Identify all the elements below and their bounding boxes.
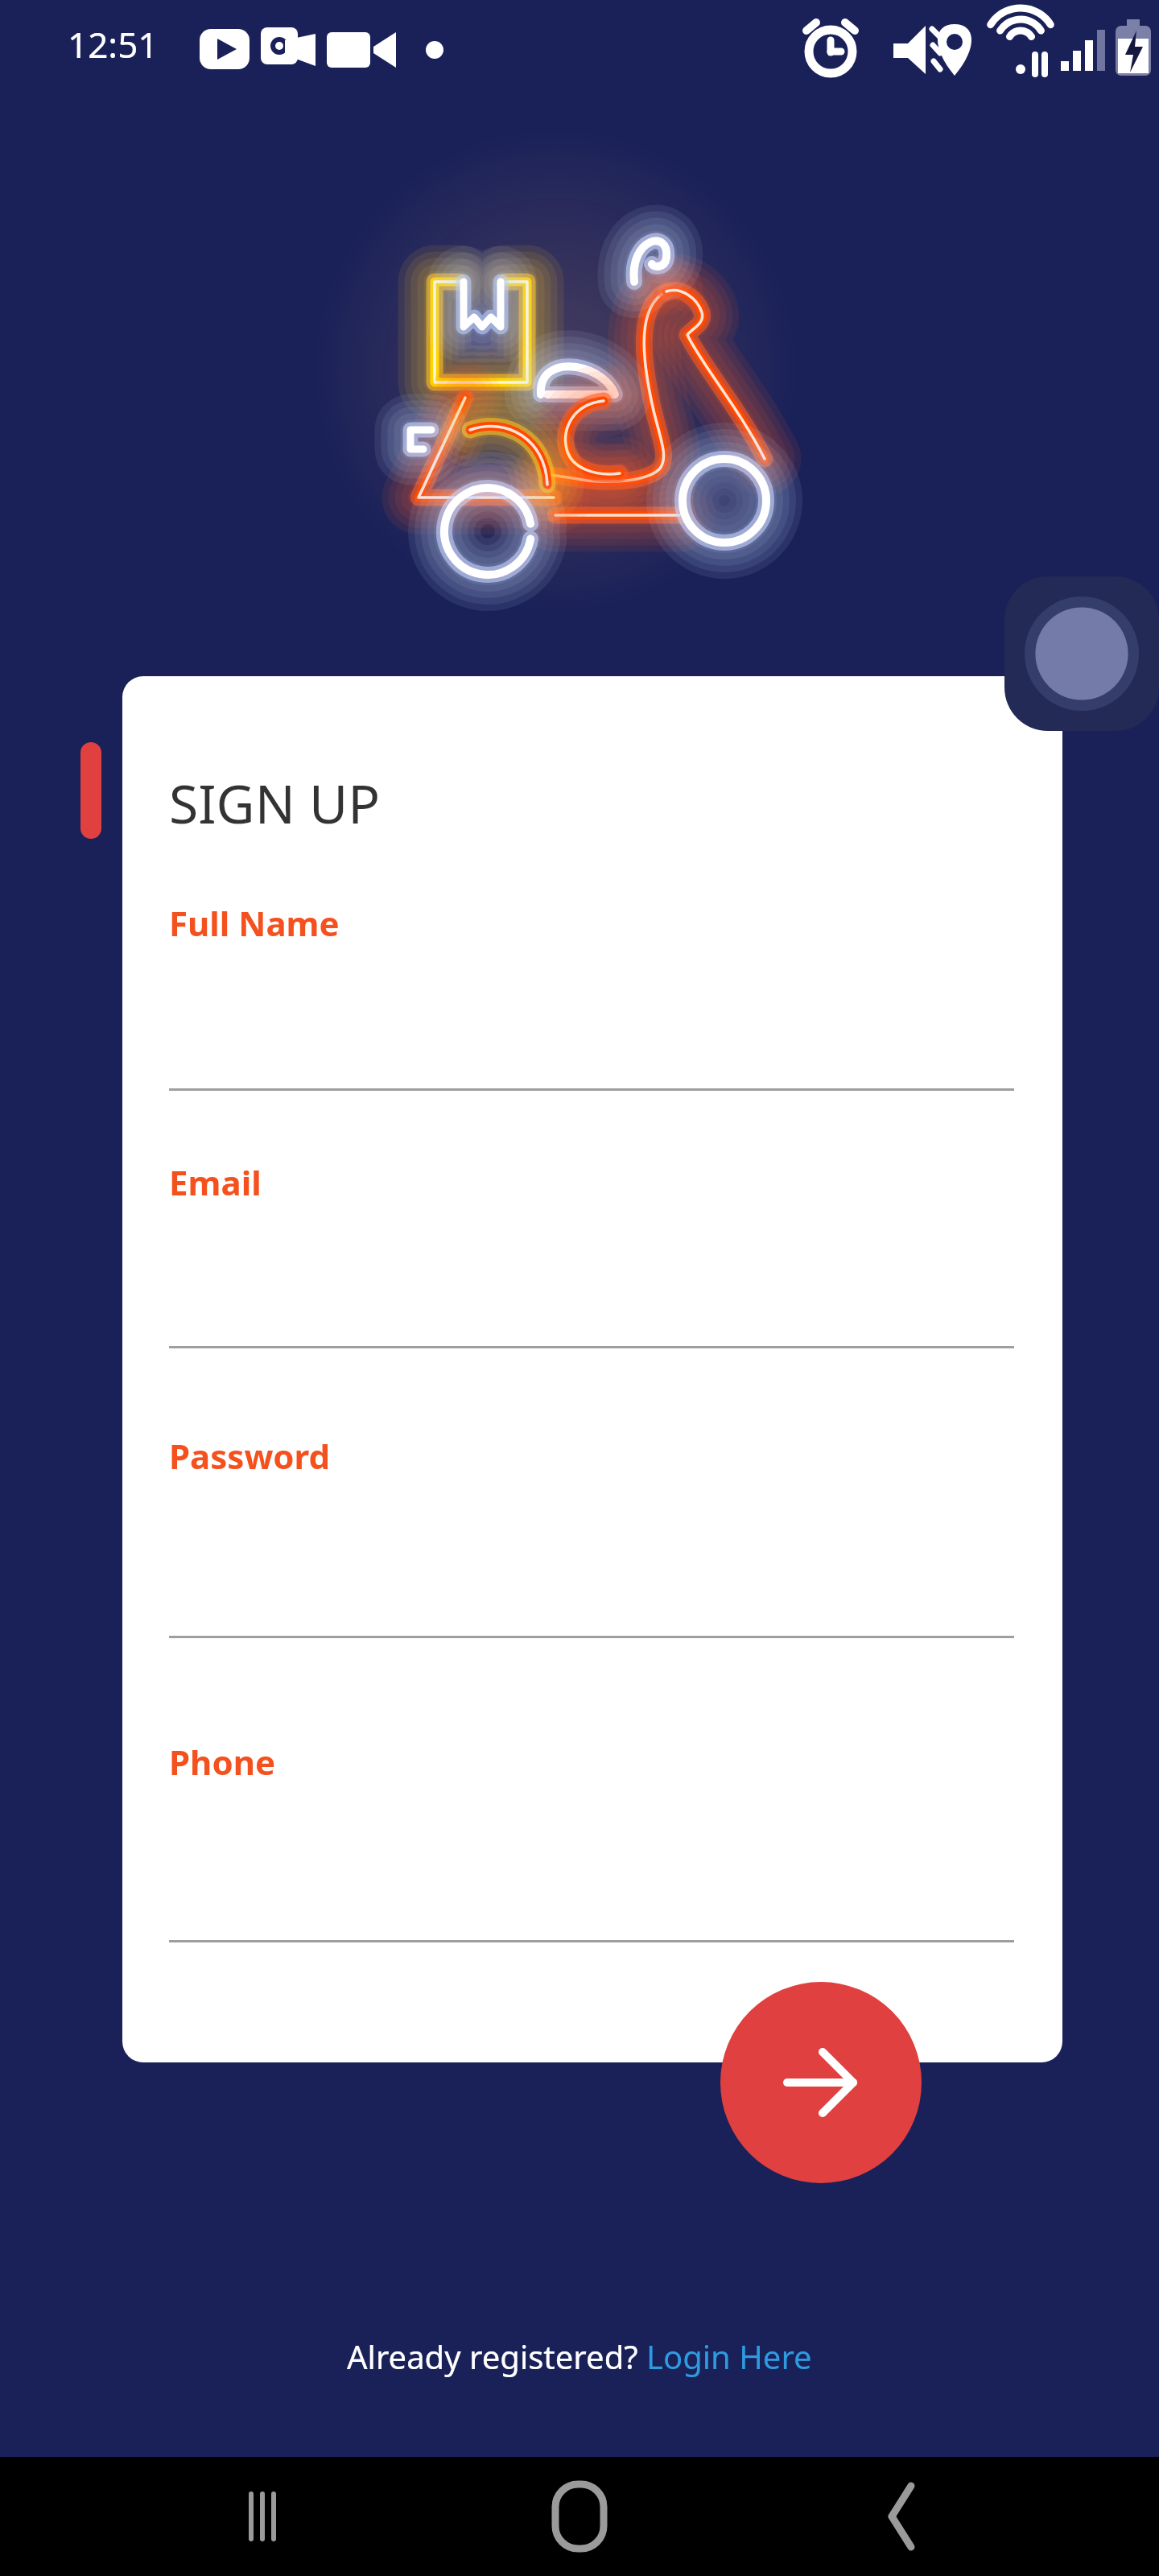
button[interactable]: Floating assistant [1004,576,1159,731]
button[interactable]: Password [169,1433,331,1479]
button[interactable]: Full Name [169,900,340,946]
button[interactable]: Email [169,1159,262,1205]
staticText: 12:51 [68,20,159,68]
button[interactable]: Phone [169,1739,276,1785]
staticText: SIGN UP [169,766,381,839]
button[interactable]: Login Here [646,2334,812,2378]
button[interactable]: Submit sign up [720,1982,922,2183]
staticText: Already registered? [347,2334,646,2378]
